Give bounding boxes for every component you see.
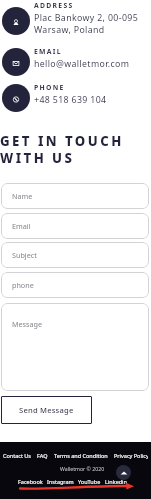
button[interactable]: Email (2, 48, 30, 76)
staticText: FAQ (37, 452, 48, 459)
button[interactable]: Privacy Policy (111, 452, 151, 459)
staticText: ADDRESS (34, 1, 74, 10)
button[interactable]: Message (1, 303, 149, 391)
staticText: phone (12, 280, 34, 290)
staticText: GET IN TOUCH WITH US (0, 132, 124, 166)
button[interactable]: Name (1, 183, 149, 209)
staticText: PHONE (34, 83, 65, 92)
button[interactable]: Scroll to top (116, 465, 131, 480)
staticText: hello@walletmor.com (34, 58, 130, 70)
button[interactable]: Subject (1, 242, 149, 268)
staticText: Terms and Condition (54, 452, 108, 459)
button[interactable]: Send Message (1, 396, 92, 424)
button[interactable]: YouTube (76, 478, 103, 485)
button[interactable]: phone (1, 272, 149, 298)
button[interactable]: Email (1, 213, 149, 239)
button[interactable]: FAQ (34, 452, 51, 459)
button[interactable]: Address (2, 7, 30, 35)
button[interactable]: Linkedin (103, 478, 129, 485)
staticText: +48 518 639 104 (34, 94, 107, 106)
staticText: Plac Bankowy 2, 00-095 (34, 12, 139, 24)
button[interactable]: Terms and Condition (51, 452, 111, 459)
button[interactable]: Instagram (45, 478, 76, 485)
button[interactable]: Facebook (16, 478, 45, 485)
staticText: Warsaw, Poland (34, 24, 105, 36)
staticText: Message (12, 319, 42, 329)
staticText: EMAIL (34, 47, 62, 56)
staticText: Subject (12, 250, 37, 260)
staticText: Facebook (18, 478, 43, 485)
staticText: Linkedin (105, 478, 127, 485)
staticText: Privacy Policy (114, 452, 148, 459)
staticText: Instagram (47, 478, 74, 485)
staticText: Name (12, 191, 33, 201)
staticText: Email (12, 221, 31, 231)
button[interactable]: Contact Us (0, 452, 34, 459)
button[interactable]: Phone (2, 84, 30, 112)
staticText: Contact Us (3, 452, 31, 459)
staticText: YouTube (78, 478, 101, 485)
staticText: Send Message (19, 405, 74, 415)
staticText: Walletmor © 2020 (60, 465, 105, 472)
